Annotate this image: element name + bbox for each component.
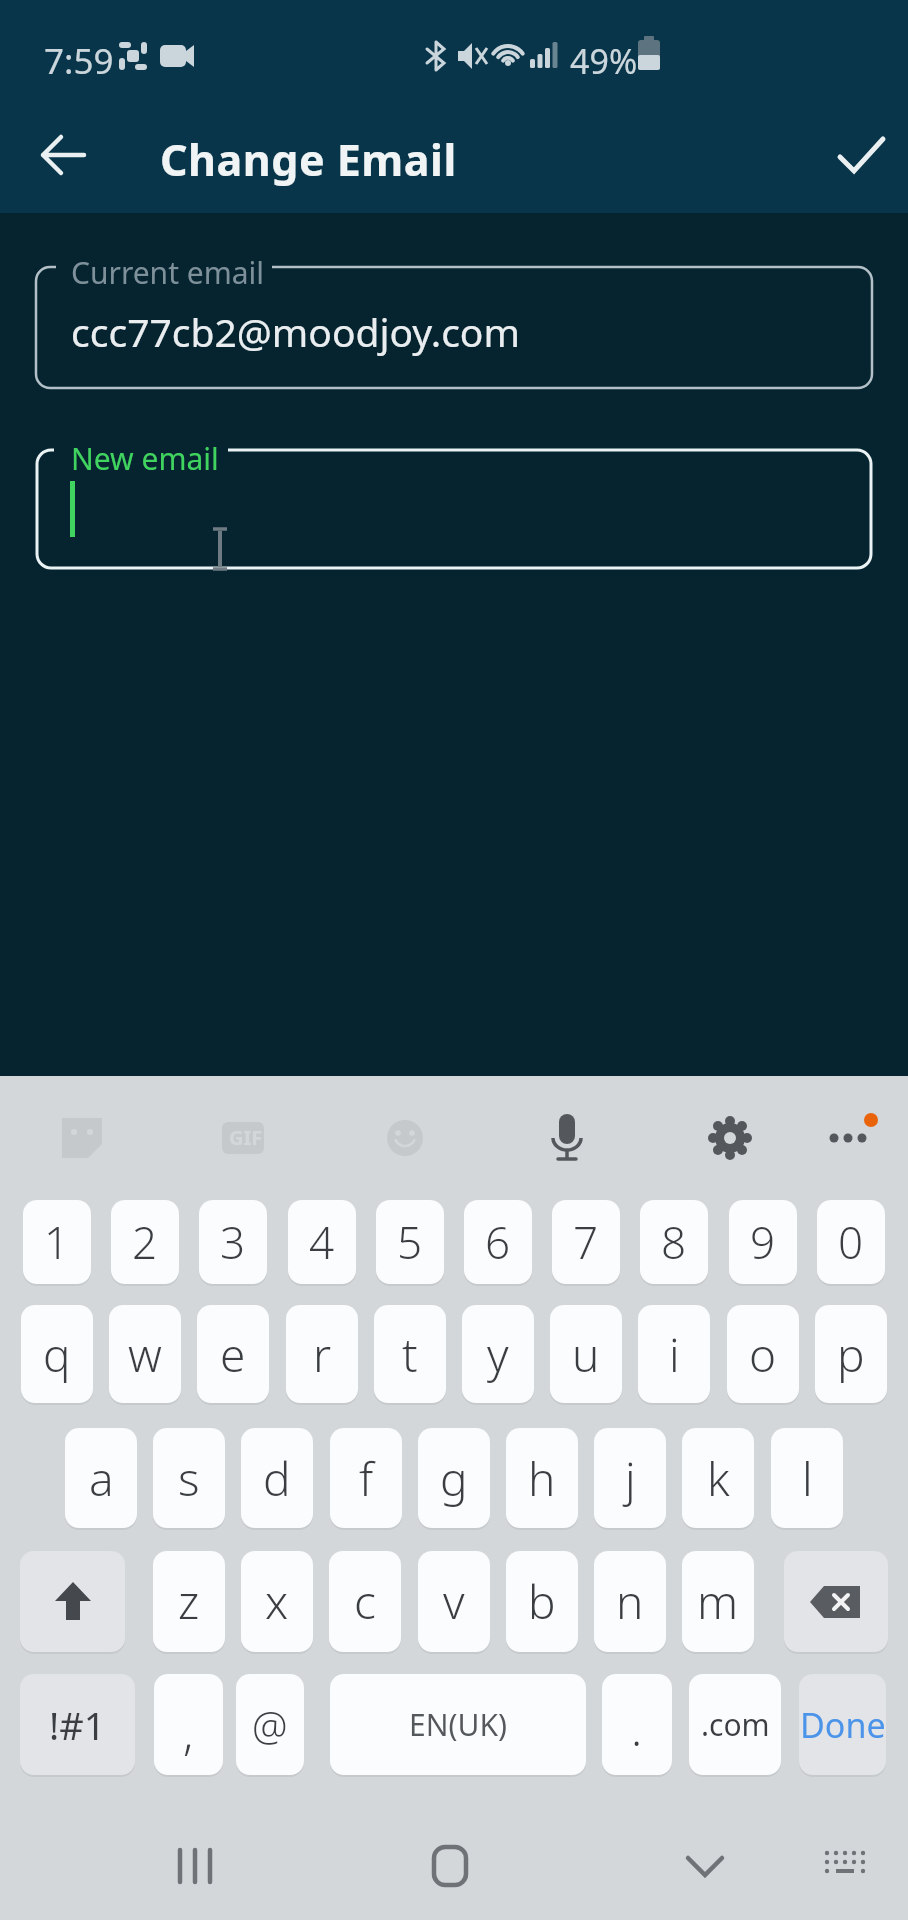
button[interactable]: [537, 1108, 597, 1168]
button[interactable]: [818, 1108, 878, 1168]
button[interactable]: ,: [154, 1674, 223, 1775]
button[interactable]: p: [815, 1305, 887, 1403]
staticText: .: [631, 1697, 643, 1760]
button[interactable]: EN(UK): [330, 1674, 586, 1775]
staticText: w: [128, 1323, 162, 1386]
staticText: x: [265, 1570, 289, 1633]
staticText: 7: [573, 1212, 599, 1272]
button[interactable]: 8: [640, 1200, 708, 1284]
button[interactable]: k: [682, 1428, 754, 1528]
staticText: 9: [750, 1212, 776, 1272]
staticText: 3: [220, 1212, 246, 1272]
staticText: k: [707, 1447, 730, 1510]
button[interactable]: y: [462, 1305, 534, 1403]
button[interactable]: 0: [817, 1200, 885, 1284]
staticText: 5: [397, 1212, 423, 1272]
button[interactable]: 2: [111, 1200, 179, 1284]
button[interactable]: [784, 1551, 888, 1652]
button[interactable]: m: [682, 1551, 754, 1652]
staticText: b: [528, 1570, 556, 1633]
button[interactable]: [155, 1826, 235, 1906]
button[interactable]: [700, 1108, 760, 1168]
button[interactable]: [212, 1108, 272, 1168]
button[interactable]: x: [241, 1551, 313, 1652]
button[interactable]: e: [197, 1305, 269, 1403]
button[interactable]: 6: [464, 1200, 532, 1284]
button[interactable]: t: [374, 1305, 446, 1403]
staticText: @: [252, 1698, 288, 1752]
button[interactable]: [665, 1826, 745, 1906]
staticText: Done: [800, 1702, 886, 1748]
button[interactable]: l: [771, 1428, 843, 1528]
staticText: 7:59: [44, 37, 114, 85]
button[interactable]: [32, 125, 92, 185]
button[interactable]: 7: [552, 1200, 620, 1284]
staticText: 8: [661, 1212, 687, 1272]
button[interactable]: g: [418, 1428, 490, 1528]
button[interactable]: 9: [729, 1200, 797, 1284]
button[interactable]: [805, 1826, 885, 1906]
button[interactable]: Done: [799, 1674, 886, 1775]
staticText: n: [616, 1570, 644, 1633]
staticText: Current email: [71, 252, 265, 293]
staticText: e: [220, 1323, 246, 1386]
button[interactable]: z: [153, 1551, 225, 1652]
staticText: r: [313, 1323, 332, 1386]
staticText: g: [440, 1447, 468, 1510]
button[interactable]: v: [418, 1551, 490, 1652]
staticText: Change Email: [160, 130, 457, 189]
staticText: 4: [309, 1212, 335, 1272]
staticText: ,: [183, 1701, 194, 1764]
button[interactable]: r: [286, 1305, 358, 1403]
button[interactable]: q: [21, 1305, 93, 1403]
button[interactable]: [832, 125, 892, 185]
button[interactable]: o: [727, 1305, 799, 1403]
button[interactable]: f: [330, 1428, 402, 1528]
button[interactable]: d: [241, 1428, 313, 1528]
button[interactable]: !#1: [20, 1674, 135, 1775]
staticText: j: [625, 1447, 636, 1510]
button[interactable]: i: [638, 1305, 710, 1403]
staticText: 2: [132, 1212, 158, 1272]
button[interactable]: [37, 450, 871, 568]
staticText: !#1: [49, 1699, 106, 1751]
staticText: o: [749, 1323, 777, 1386]
staticText: EN(UK): [409, 1704, 507, 1745]
staticText: y: [487, 1323, 509, 1386]
button[interactable]: c: [329, 1551, 401, 1652]
staticText: t: [402, 1323, 418, 1386]
button[interactable]: a: [65, 1428, 137, 1528]
button[interactable]: w: [109, 1305, 181, 1403]
staticText: i: [669, 1323, 680, 1386]
staticText: 0: [838, 1212, 864, 1272]
button[interactable]: [375, 1108, 435, 1168]
button[interactable]: j: [594, 1428, 666, 1528]
button[interactable]: [52, 1108, 112, 1168]
button[interactable]: n: [594, 1551, 666, 1652]
staticText: s: [178, 1447, 200, 1510]
staticText: v: [443, 1570, 465, 1633]
button[interactable]: 1: [23, 1200, 91, 1284]
button[interactable]: [410, 1826, 490, 1906]
button[interactable]: .com: [689, 1674, 781, 1775]
button[interactable]: .: [602, 1674, 672, 1775]
button[interactable]: 5: [376, 1200, 444, 1284]
button[interactable]: s: [153, 1428, 225, 1528]
staticText: New email: [71, 438, 219, 479]
staticText: q: [43, 1323, 71, 1386]
staticText: c: [354, 1570, 376, 1633]
button[interactable]: h: [506, 1428, 578, 1528]
staticText: a: [89, 1447, 114, 1510]
button[interactable]: [20, 1551, 125, 1652]
button[interactable]: 3: [199, 1200, 267, 1284]
staticText: GIF: [229, 1124, 263, 1151]
staticText: p: [837, 1323, 865, 1386]
staticText: 6: [485, 1212, 511, 1272]
button[interactable]: @: [236, 1674, 304, 1775]
button[interactable]: b: [506, 1551, 578, 1652]
staticText: u: [572, 1323, 600, 1386]
button[interactable]: u: [550, 1305, 622, 1403]
button[interactable]: 4: [288, 1200, 356, 1284]
button[interactable]: [36, 267, 872, 388]
staticText: d: [263, 1447, 291, 1510]
